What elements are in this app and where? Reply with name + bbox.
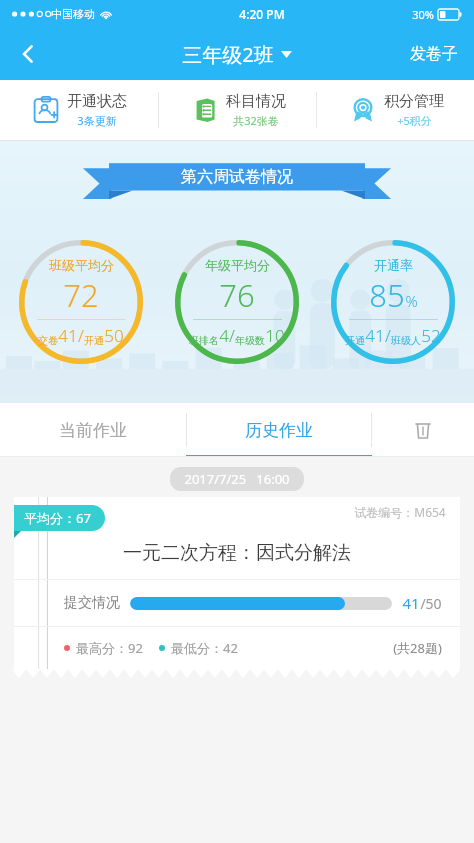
staticText: 一元二次方程：因式分解法 — [123, 541, 351, 565]
staticText: 试卷编号：M654 — [354, 504, 446, 520]
staticText: 年级平均分 — [205, 257, 270, 273]
staticText: 4 — [219, 324, 229, 347]
staticText: / — [78, 324, 84, 347]
button[interactable]: 开通率 — [318, 227, 468, 377]
staticText: 2017/7/25 16:00 — [184, 470, 290, 488]
button[interactable]: 发卷子 — [394, 28, 474, 80]
button[interactable]: 积分管理 — [317, 80, 474, 140]
staticText: 中国移动 — [51, 7, 95, 21]
staticText: 41 — [365, 324, 385, 347]
staticText: 76 — [219, 274, 255, 316]
staticText: 4:20 PM — [239, 6, 285, 22]
staticText: 历史作业 — [245, 420, 313, 441]
staticText: 班级平均分 — [49, 257, 114, 273]
staticText: 共32张卷 — [233, 113, 279, 128]
staticText: 班级人 — [391, 334, 421, 347]
staticText: 最高分：92 — [76, 639, 143, 657]
button[interactable]: Delete — [372, 403, 474, 457]
staticText: 第六周试卷情况 — [181, 167, 293, 187]
staticText: 开通率 — [374, 257, 413, 273]
staticText: 积分管理 — [384, 92, 444, 111]
staticText: 年级数 — [235, 334, 265, 347]
staticText: 平均分：67 — [24, 509, 91, 527]
staticText: 三年级2班 — [182, 41, 274, 68]
staticText: 72 — [63, 274, 99, 316]
staticText: / — [229, 324, 235, 347]
staticText: 10 — [265, 324, 285, 347]
staticText: % — [405, 291, 418, 311]
staticText: 开通状态 — [67, 92, 127, 111]
staticText: 52 — [421, 324, 441, 347]
button[interactable]: 当前作业 — [0, 403, 186, 457]
staticText: 41 — [58, 324, 78, 347]
staticText: 41 — [402, 593, 420, 613]
button[interactable]: 历史作业 — [186, 403, 372, 457]
button[interactable]: 开通状态 — [0, 80, 158, 140]
staticText: 提交情况 — [64, 594, 120, 612]
staticText: / — [385, 324, 391, 347]
staticText: 3条更新 — [77, 113, 117, 128]
staticText: +5积分 — [397, 113, 432, 128]
button[interactable]: 科目情况 — [159, 80, 316, 140]
staticText: 85 — [369, 274, 405, 316]
staticText: 班排名 — [189, 334, 219, 347]
staticText: 发卷子 — [410, 44, 458, 64]
staticText: 30% — [412, 7, 434, 22]
button[interactable]: Back — [0, 28, 56, 80]
staticText: /50 — [420, 594, 442, 613]
button[interactable]: 班级平均分 — [6, 227, 156, 377]
staticText: 最低分：42 — [171, 639, 238, 657]
staticText: 开通 — [84, 334, 104, 347]
staticText: 交卷 — [38, 334, 58, 347]
staticText: 当前作业 — [59, 420, 127, 441]
staticText: (共28题) — [393, 639, 442, 657]
staticText: 开通 — [345, 334, 365, 347]
button[interactable]: 年级平均分 — [162, 227, 312, 377]
staticText: 科目情况 — [226, 92, 286, 111]
button[interactable]: 三年级2班 — [182, 41, 292, 68]
staticText: 50 — [104, 324, 124, 347]
